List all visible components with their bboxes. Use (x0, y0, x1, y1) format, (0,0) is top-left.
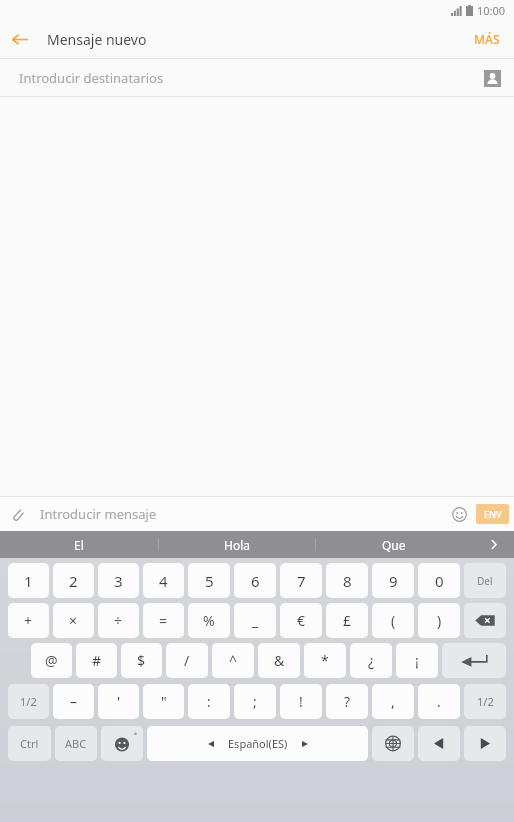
button[interactable]: + (8, 603, 49, 638)
staticText: ! (299, 692, 303, 711)
button[interactable]: ) (418, 603, 460, 638)
staticText: × (69, 611, 78, 630)
button[interactable]: ? (326, 684, 368, 719)
staticText: 6 (251, 571, 260, 591)
button[interactable]: Move left (418, 726, 460, 761)
button[interactable]: Backspace (464, 603, 506, 638)
button[interactable]: / (166, 643, 208, 678)
button[interactable]: Del (464, 563, 506, 598)
button[interactable]: : (188, 684, 230, 719)
staticText: 10:00 (477, 3, 506, 18)
button[interactable]: 1/2 (464, 684, 506, 719)
button[interactable]: 3 (98, 563, 139, 598)
staticText: Hola (224, 537, 250, 553)
button[interactable]: ÷ (98, 603, 139, 638)
button[interactable]: 1/2 (8, 684, 49, 719)
button[interactable]: € (280, 603, 322, 638)
staticText: 2 (69, 571, 78, 591)
button[interactable]: El (0, 531, 158, 558)
button[interactable]: 9 (372, 563, 414, 598)
button[interactable]: Back (0, 20, 38, 58)
staticText: – (70, 692, 77, 711)
staticText: 8 (343, 571, 352, 591)
button[interactable]: 0 (418, 563, 460, 598)
button[interactable]: ( (372, 603, 414, 638)
button[interactable]: Emoji (101, 726, 143, 761)
staticText: Introducir destinatarios (19, 69, 164, 87)
staticText: @ (45, 651, 58, 670)
staticText: ( (391, 611, 396, 630)
staticText: ABC (65, 736, 87, 751)
button[interactable]: % (188, 603, 230, 638)
staticText: & (274, 651, 285, 670)
staticText: / (184, 651, 190, 670)
staticText: 9 (389, 571, 398, 591)
staticText: ? (344, 692, 351, 711)
button[interactable]: _ (234, 603, 276, 638)
staticText: Ctrl (20, 736, 39, 751)
staticText: Introducir mensaje (40, 505, 157, 523)
button[interactable]: Que (315, 531, 472, 558)
button[interactable]: £ (326, 603, 368, 638)
button[interactable]: ! (280, 684, 322, 719)
button[interactable]: $ (121, 643, 162, 678)
button[interactable]: More suggestions (472, 531, 514, 558)
staticText: . (437, 692, 441, 711)
staticText: ¡ (415, 651, 419, 670)
button[interactable]: Attach (0, 497, 34, 531)
button[interactable]: 7 (280, 563, 322, 598)
staticText: Español(ES) (228, 736, 288, 751)
button[interactable]: ' (98, 684, 139, 719)
staticText: El (74, 537, 84, 553)
staticText: ) (437, 611, 442, 630)
button[interactable]: . (418, 684, 460, 719)
button[interactable]: – (53, 684, 94, 719)
button[interactable]: 5 (188, 563, 230, 598)
button[interactable]: # (76, 643, 117, 678)
staticText: 5 (205, 571, 214, 591)
button[interactable]: MÁS (460, 20, 514, 58)
staticText: ' (117, 692, 121, 711)
button[interactable]: 2 (53, 563, 94, 598)
button[interactable]: , (372, 684, 414, 719)
button[interactable]: Change language (372, 726, 414, 761)
button[interactable]: Ctrl (8, 726, 51, 761)
button[interactable]: ; (234, 684, 276, 719)
button[interactable]: ¡ (396, 643, 438, 678)
staticText: * (321, 651, 329, 670)
staticText: ENV (484, 508, 502, 520)
staticText: 7 (297, 571, 306, 591)
button[interactable]: = (143, 603, 184, 638)
staticText: 0 (435, 571, 444, 591)
button[interactable]: 8 (326, 563, 368, 598)
button[interactable]: Move right (464, 726, 506, 761)
staticText: 1 (24, 571, 33, 591)
button[interactable]: ^ (212, 643, 254, 678)
staticText: Que (382, 537, 406, 553)
button[interactable]: ENV (476, 504, 509, 524)
button[interactable]: Hola (158, 531, 315, 558)
staticText: # (92, 651, 102, 670)
button[interactable]: Emoji (444, 499, 474, 529)
button[interactable]: ¿ (350, 643, 392, 678)
button[interactable]: @ (31, 643, 72, 678)
button[interactable]: & (258, 643, 300, 678)
staticText: 1/2 (20, 694, 37, 709)
staticText: = (159, 611, 168, 630)
button[interactable]: 1 (8, 563, 49, 598)
button[interactable]: 6 (234, 563, 276, 598)
button[interactable]: Español(ES) (147, 726, 368, 761)
staticText: € (297, 611, 306, 630)
staticText: ¿ (368, 651, 375, 670)
button[interactable]: " (143, 684, 184, 719)
button[interactable]: * (304, 643, 346, 678)
staticText: ; (253, 692, 257, 711)
button[interactable]: Enter (442, 643, 506, 678)
button[interactable]: ABC (55, 726, 97, 761)
button[interactable]: Contacts (474, 60, 510, 96)
button[interactable]: 4 (143, 563, 184, 598)
staticText: ^ (229, 651, 238, 670)
staticText: _ (252, 611, 259, 630)
staticText: + (24, 611, 33, 630)
button[interactable]: × (53, 603, 94, 638)
